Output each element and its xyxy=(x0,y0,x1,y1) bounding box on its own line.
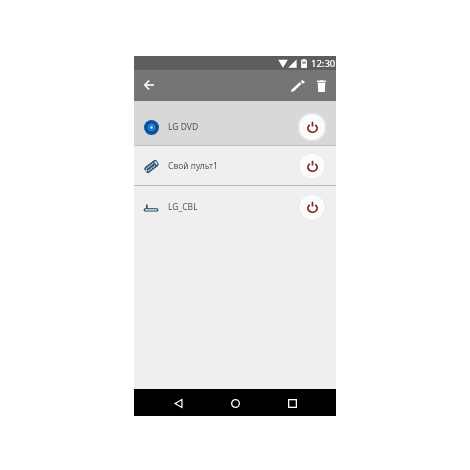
button[interactable]: Back xyxy=(139,75,159,95)
button[interactable]: Свой пульт1 xyxy=(134,146,336,186)
staticText: 12:30 xyxy=(311,57,336,70)
button[interactable]: Home xyxy=(222,390,248,416)
button[interactable]: Power xyxy=(298,113,326,141)
button[interactable]: Delete xyxy=(310,75,332,97)
button[interactable]: Recents xyxy=(279,390,305,416)
staticText: LG_CBL xyxy=(168,201,198,213)
button[interactable]: Edit xyxy=(287,75,309,97)
button[interactable]: Power xyxy=(298,152,326,180)
button[interactable]: Back xyxy=(165,390,191,416)
button[interactable]: LG DVD xyxy=(134,101,336,146)
button[interactable]: Power xyxy=(298,193,326,221)
staticText: Свой пульт1 xyxy=(168,160,218,172)
button[interactable]: LG_CBL xyxy=(134,186,336,226)
staticText: LG DVD xyxy=(168,121,199,133)
